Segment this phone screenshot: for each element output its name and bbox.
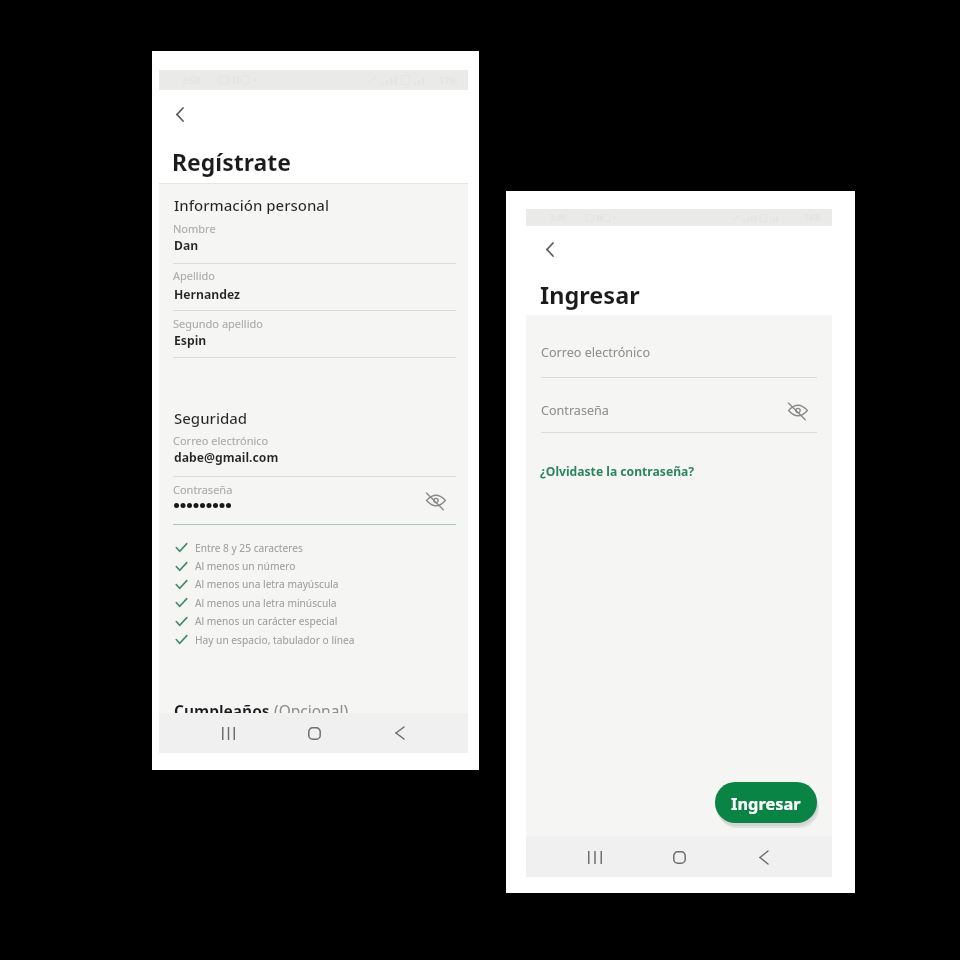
button[interactable]: Home <box>662 840 696 874</box>
staticText: ¿Olvidaste la contraseña? <box>540 463 695 480</box>
staticText: Regístrate <box>172 146 292 177</box>
staticText: Hay un espacio, tabulador o línea <box>195 633 355 647</box>
staticText: (Opcional) <box>274 700 349 721</box>
staticText: Al menos un número <box>195 559 296 573</box>
staticText: Contraseña <box>173 482 233 497</box>
button[interactable]: Mostrar contraseña <box>786 398 810 422</box>
staticText: Apellido <box>173 268 215 283</box>
staticText: Correo electrónico <box>173 433 269 448</box>
staticText: Nombre <box>173 221 216 236</box>
staticText: Ingresar <box>540 279 640 311</box>
button[interactable]: Recent apps <box>578 840 612 874</box>
staticText: Dan <box>174 237 199 254</box>
staticText: Segundo apellido <box>173 316 263 331</box>
staticText: Correo electrónico <box>541 344 651 361</box>
staticText: Al menos una letra minúscula <box>195 596 337 610</box>
staticText: Contraseña <box>541 402 609 419</box>
button[interactable]: Ingresar <box>715 782 817 823</box>
button[interactable]: Nombre <box>173 219 456 265</box>
button[interactable]: Recent apps <box>211 716 245 750</box>
staticText: Hernandez <box>174 286 241 303</box>
button[interactable]: Home <box>297 716 331 750</box>
button[interactable]: Mostrar contraseña <box>424 488 448 512</box>
staticText: Cumpleaños <box>174 700 274 721</box>
button[interactable]: Back <box>383 716 417 750</box>
button[interactable]: Segundo apellido <box>173 314 456 360</box>
staticText: Ingresar <box>731 792 801 814</box>
button[interactable]: Contraseña <box>173 480 456 526</box>
staticText: Seguridad <box>174 408 248 428</box>
staticText: Entre 8 y 25 caracteres <box>195 541 303 555</box>
button[interactable]: Back <box>538 237 562 261</box>
staticText: dabe@gmail.com <box>174 449 279 466</box>
staticText: Información personal <box>174 195 329 215</box>
button[interactable]: Back <box>747 840 781 874</box>
staticText: Al menos un carácter especial <box>195 614 338 628</box>
staticText: Espin <box>174 332 207 349</box>
button[interactable]: Apellido <box>173 266 456 312</box>
button[interactable]: Correo electrónico <box>173 431 456 478</box>
button[interactable]: ¿Olvidaste la contraseña? <box>540 463 695 480</box>
button[interactable]: Back <box>168 102 192 126</box>
staticText: Al menos una letra mayúscula <box>195 577 339 591</box>
